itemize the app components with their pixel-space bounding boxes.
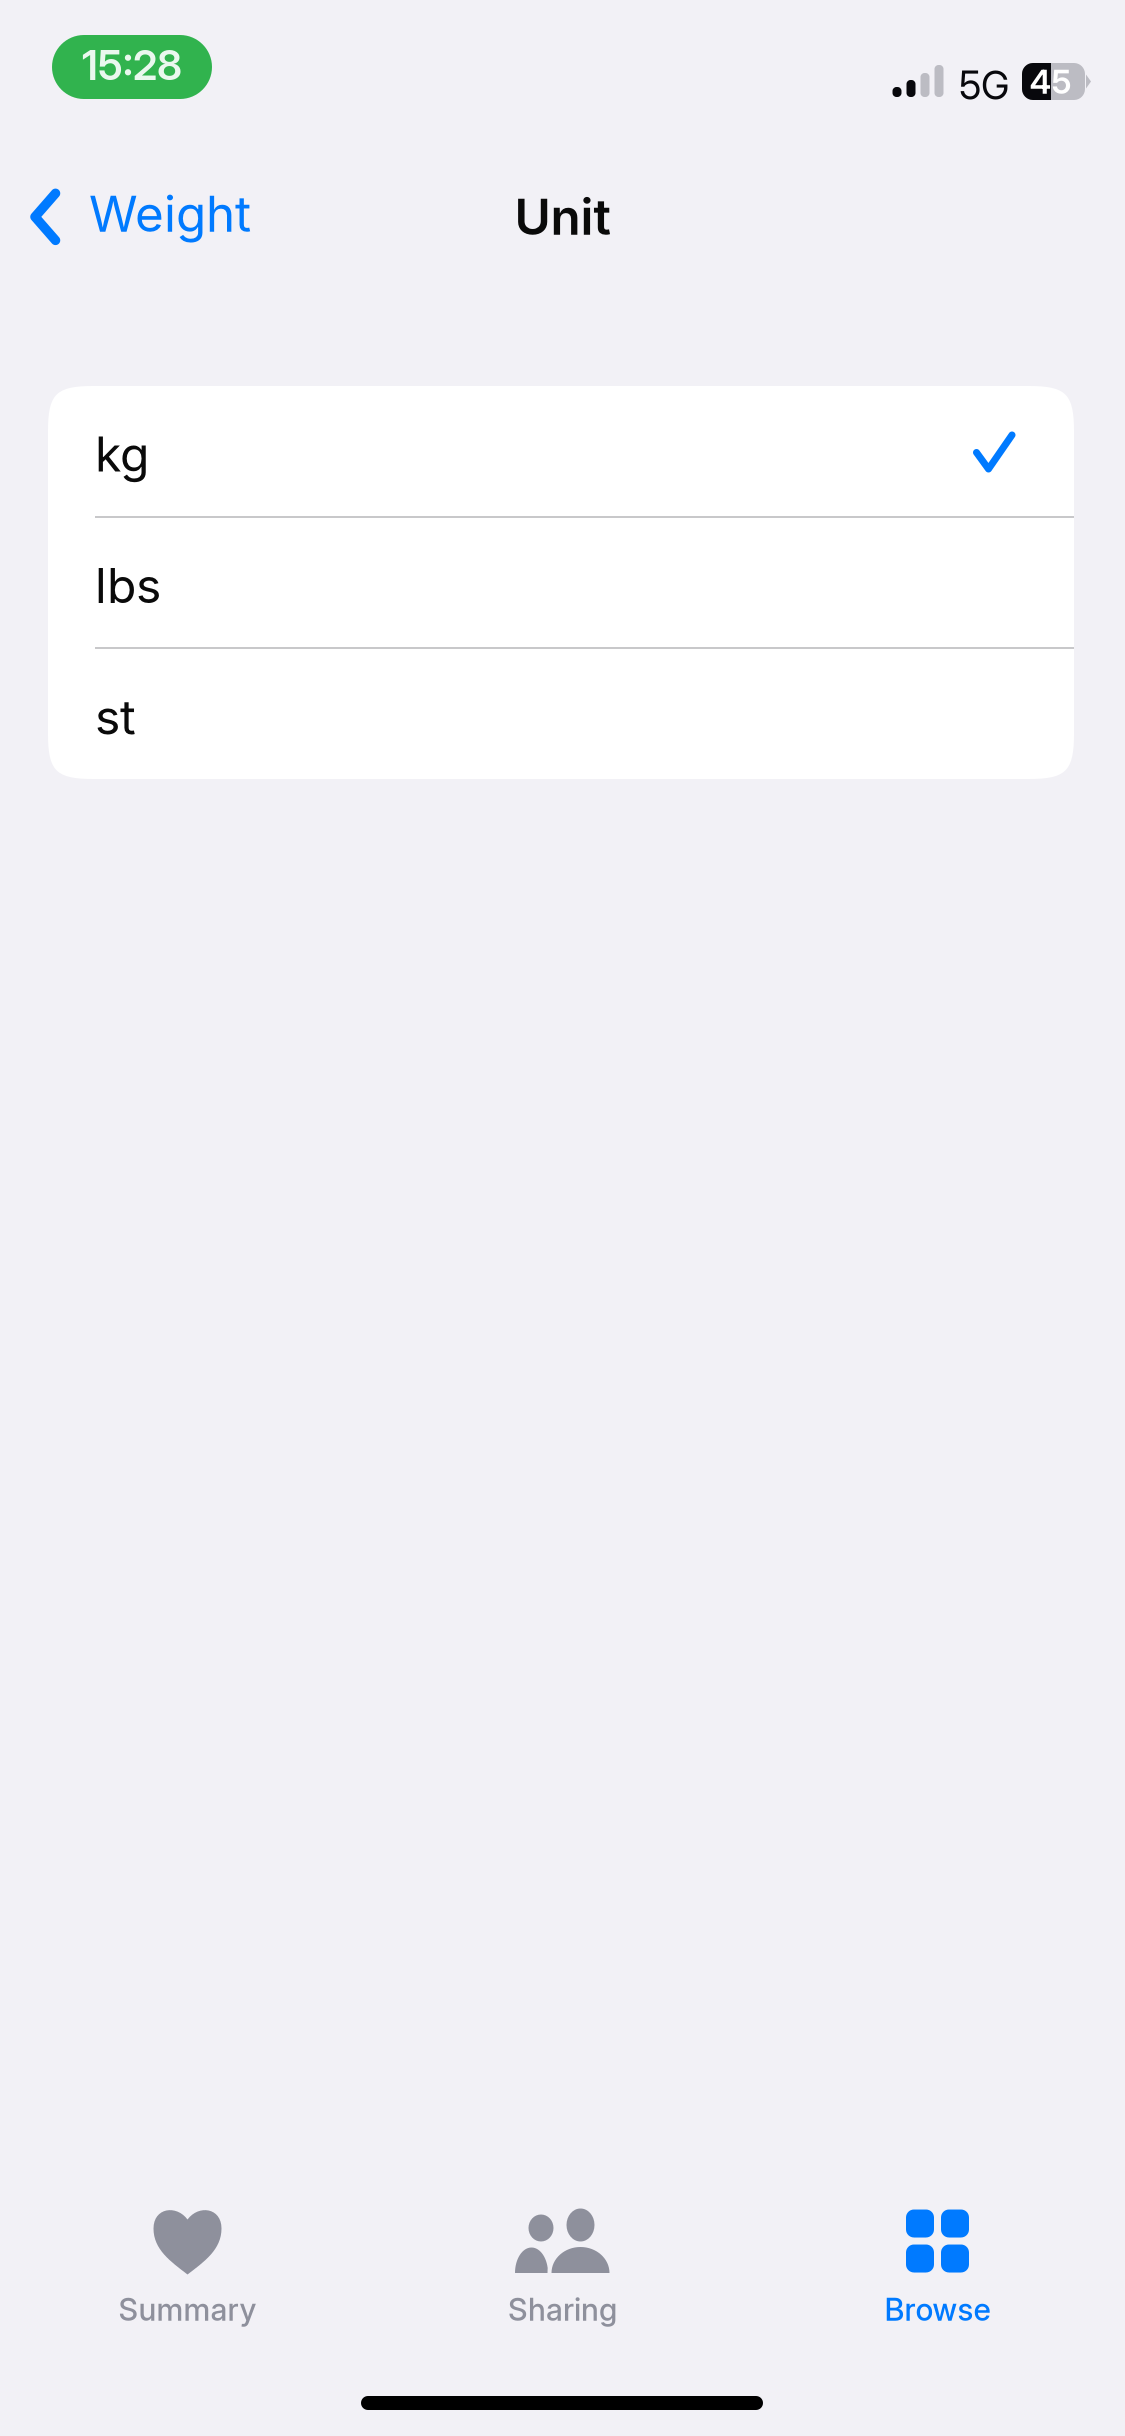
staticText: Unit (514, 187, 610, 247)
staticText: kg (95, 425, 149, 483)
button[interactable]: Weight (0, 167, 276, 267)
button[interactable]: lbs (48, 518, 1074, 647)
staticText: 5G (959, 62, 1009, 109)
staticText: 45 (1029, 61, 1071, 102)
button[interactable]: Browse (750, 2201, 1125, 2334)
staticText: Browse (884, 2291, 990, 2328)
staticText: st (95, 688, 136, 746)
staticText: Sharing (508, 2291, 617, 2328)
button[interactable]: st (48, 649, 1074, 779)
staticText: 15:28 (82, 40, 182, 90)
staticText: lbs (95, 556, 161, 615)
button[interactable]: Sharing (375, 2201, 750, 2334)
button[interactable]: kg (48, 386, 1074, 516)
staticText: Summary (118, 2291, 256, 2328)
staticText: Weight (89, 184, 251, 244)
button[interactable]: Summary (0, 2201, 375, 2334)
